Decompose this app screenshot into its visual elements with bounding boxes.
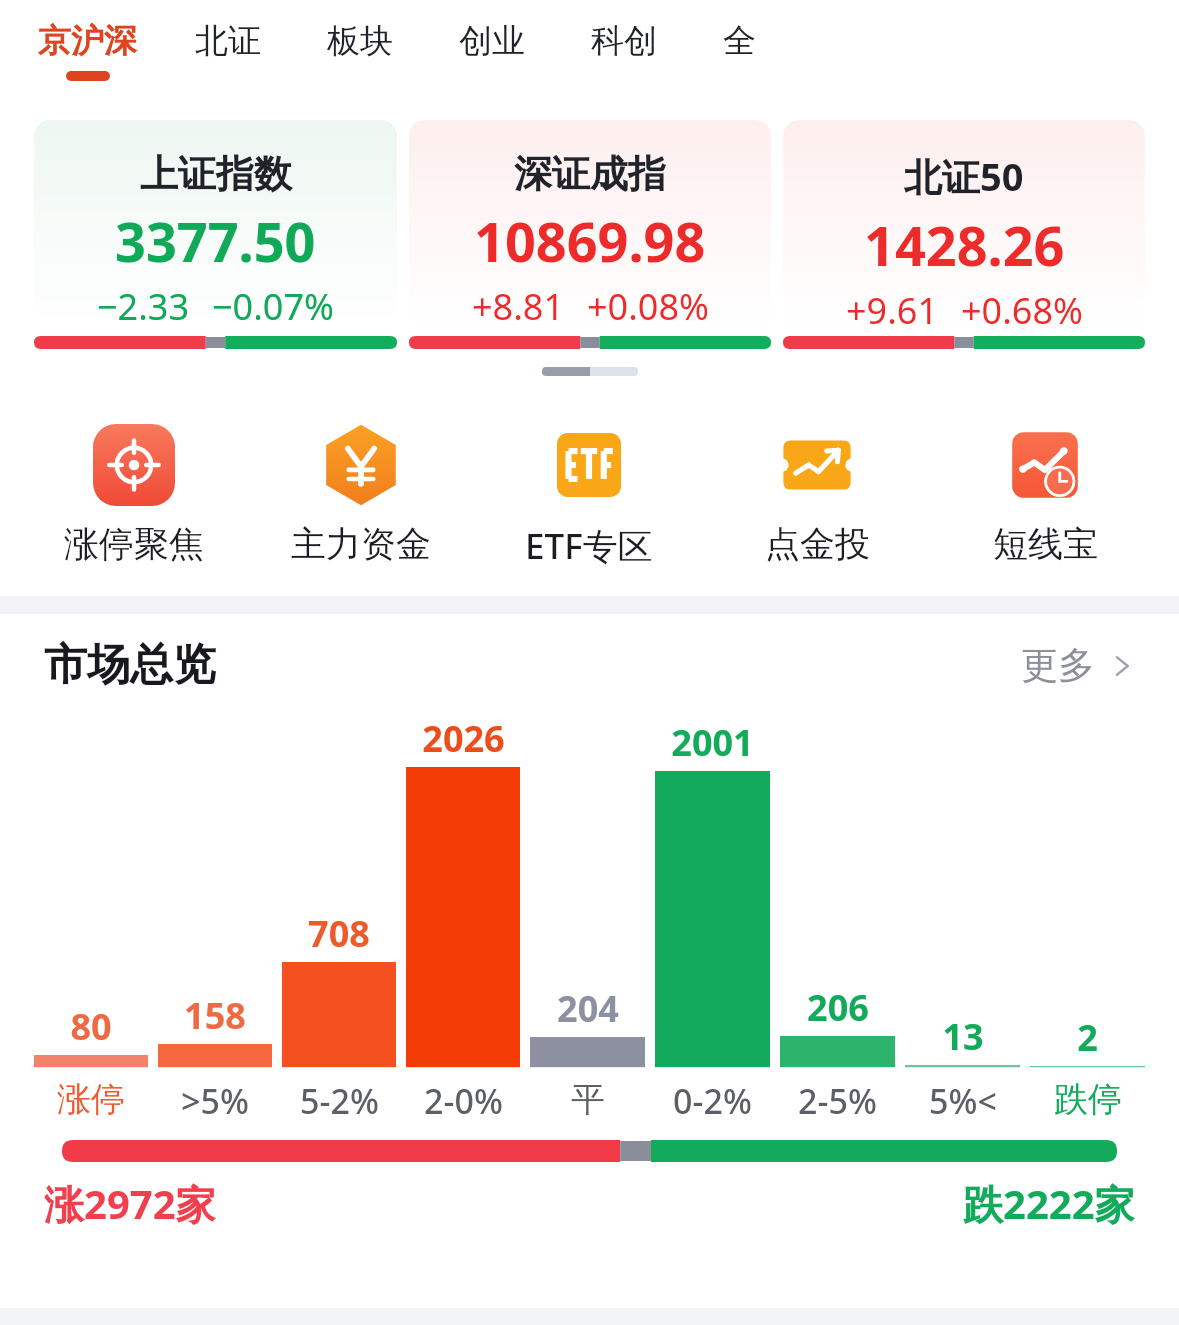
staticText: 1428.26 [864, 208, 1065, 282]
staticText: 跌停 [1054, 1078, 1122, 1121]
button[interactable]: 深证成指 [409, 120, 771, 349]
button[interactable]: 点金投 [703, 424, 931, 566]
button[interactable]: 上证指数 [34, 120, 397, 349]
button[interactable]: 京沪深 [34, 0, 141, 81]
staticText: 涨停 [57, 1078, 125, 1121]
staticText: 2001 [671, 718, 754, 767]
button[interactable]: 短线宝 [931, 424, 1159, 566]
staticText: 206 [807, 983, 869, 1032]
staticText: 全 [723, 20, 756, 62]
button[interactable]: 708 [282, 714, 396, 1124]
staticText: 204 [557, 984, 619, 1033]
button[interactable]: 2 [1030, 714, 1145, 1121]
staticText: 涨停聚焦 [64, 522, 204, 566]
staticText: 2026 [422, 714, 505, 763]
button[interactable]: 北证50 [783, 120, 1145, 349]
staticText: 科创 [591, 20, 657, 62]
staticText: 北证 [195, 20, 261, 62]
staticText: 更多 [1021, 642, 1095, 689]
staticText: 创业 [459, 20, 525, 62]
button[interactable]: 158 [158, 714, 272, 1124]
staticText: 10869.98 [474, 204, 706, 278]
staticText: 2 [1077, 1013, 1098, 1062]
staticText: +0.08% [587, 282, 709, 330]
staticText: 80 [70, 1002, 112, 1051]
button[interactable]: 更多 [1021, 642, 1135, 689]
staticText: −2.33 [97, 282, 190, 330]
button[interactable]: 北证 [191, 0, 265, 71]
staticText: 跌2222家 [963, 1176, 1135, 1231]
staticText: 5-2% [300, 1078, 379, 1124]
staticText: 短线宝 [993, 522, 1098, 566]
staticText: >5% [181, 1078, 249, 1124]
button[interactable]: 科创 [587, 0, 661, 71]
staticText: +0.68% [961, 286, 1083, 330]
staticText: 0-2% [673, 1078, 752, 1124]
staticText: 涨2972家 [44, 1176, 216, 1231]
staticText: 板块 [327, 20, 393, 62]
button[interactable]: 2001 [655, 714, 770, 1124]
staticText: 深证成指 [514, 150, 666, 198]
staticText: 2-5% [798, 1078, 877, 1124]
staticText: 市场总览 [44, 638, 216, 692]
staticText: 点金投 [765, 522, 870, 566]
staticText: 5%< [929, 1078, 997, 1124]
staticText: 13 [942, 1012, 984, 1061]
staticText: −0.07% [212, 282, 334, 330]
button[interactable]: 206 [780, 714, 895, 1124]
button[interactable]: 204 [530, 714, 645, 1121]
staticText: 2-0% [424, 1078, 503, 1124]
button[interactable]: 2026 [406, 714, 520, 1124]
staticText: +9.61 [846, 286, 939, 330]
staticText: 主力资金 [291, 522, 431, 566]
button[interactable]: 13 [905, 714, 1020, 1124]
staticText: 158 [184, 991, 246, 1040]
staticText: 京沪深 [38, 20, 137, 62]
staticText: ETF专区 [525, 522, 653, 570]
button[interactable]: 全 [719, 0, 760, 71]
button[interactable]: 涨停聚焦 [20, 424, 247, 566]
staticText: 708 [308, 909, 370, 958]
staticText: 北证50 [904, 150, 1024, 202]
button[interactable]: 创业 [455, 0, 529, 71]
button[interactable]: ETF专区 [475, 424, 703, 570]
staticText: +8.81 [472, 282, 565, 330]
staticText: 平 [571, 1078, 605, 1121]
staticText: 上证指数 [140, 150, 292, 198]
button[interactable]: 80 [34, 714, 148, 1121]
button[interactable]: 板块 [323, 0, 397, 71]
button[interactable]: 主力资金 [247, 424, 475, 566]
staticText: 3377.50 [115, 204, 316, 278]
